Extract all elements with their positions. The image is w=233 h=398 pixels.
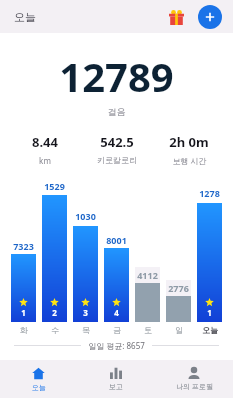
button[interactable]: Add [198,5,222,29]
staticText: 일 [175,325,183,335]
staticText: 금 [113,325,121,335]
button[interactable]: 15290 [42,180,67,322]
staticText: 2776 [168,282,189,294]
staticText: 4112 [137,269,158,281]
button[interactable]: 나의 프로필 [155,360,233,398]
staticText: 보행 시간 [172,155,207,166]
staticText: 7323 [13,240,34,252]
button[interactable]: 오늘 [0,360,77,398]
staticText: 1 [21,307,26,318]
staticText: 화 [20,325,28,335]
staticText: km [39,155,51,166]
button[interactable]: 8001 [104,180,129,322]
staticText: 오늘 [202,325,218,335]
staticText: 오늘 [14,10,36,24]
staticText: 2 [52,307,57,318]
staticText: 4 [114,307,119,318]
button[interactable]: 7323 [11,180,36,322]
staticText: 나의 프로필 [176,382,213,392]
staticText: 1 [207,307,212,318]
staticText: 2h 0m [169,133,209,151]
staticText: 목 [82,325,90,335]
staticText: 8001 [106,234,127,246]
staticText: 보고 [109,382,123,391]
staticText: 수 [51,325,59,335]
button[interactable]: 2776 [166,180,191,322]
button[interactable]: Rewards [165,6,187,28]
staticText: 3 [83,307,88,318]
staticText: 542.5 [100,133,134,151]
staticText: 8.44 [32,133,58,151]
staticText: 15290 [42,180,67,195]
staticText: 10308 [73,210,98,226]
staticText: 오늘 [32,383,46,392]
button[interactable]: 4112 [135,180,160,322]
staticText: 토 [144,325,152,335]
button[interactable]: 보고 [77,360,155,398]
button[interactable]: 12789 [197,180,222,322]
staticText: 일일 평균: 8657 [88,340,145,351]
staticText: 12789 [0,49,233,103]
button[interactable]: 10308 [73,180,98,322]
staticText: 걸음 [0,106,233,117]
staticText: 키로칼로리 [97,155,137,165]
staticText: 12789 [197,187,222,203]
